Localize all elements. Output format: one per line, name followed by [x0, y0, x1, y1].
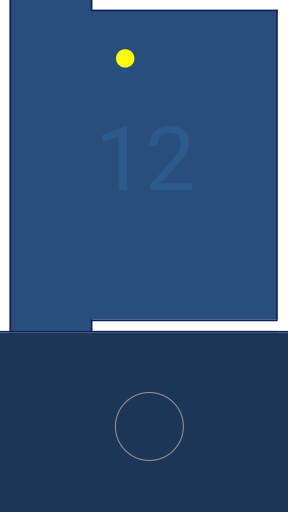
staticText: 12	[95, 107, 195, 212]
button[interactable]: Start	[115, 392, 183, 460]
